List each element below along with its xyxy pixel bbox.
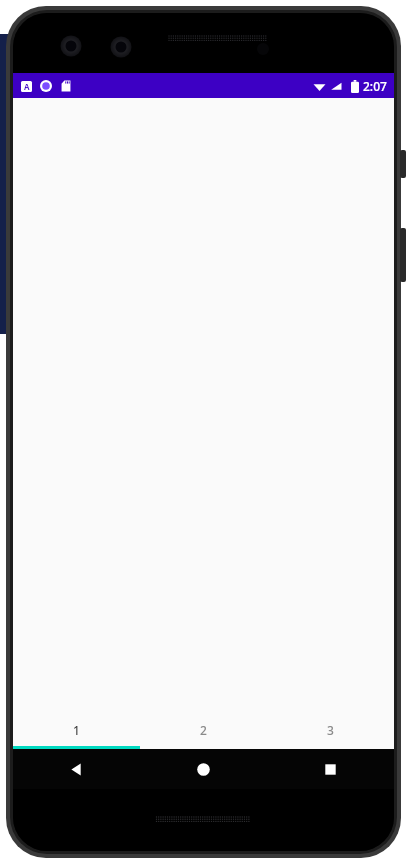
staticText: 3 bbox=[327, 722, 334, 738]
button[interactable]: Home bbox=[140, 749, 267, 789]
staticText: A bbox=[24, 81, 30, 92]
button[interactable]: 3 bbox=[267, 711, 394, 749]
button[interactable]: Recent apps bbox=[267, 749, 394, 789]
staticText: 2 bbox=[200, 722, 207, 738]
button[interactable]: 1 bbox=[13, 711, 140, 749]
button[interactable]: 2 bbox=[140, 711, 267, 749]
staticText: 2:07 bbox=[363, 78, 387, 94]
staticText: 1 bbox=[73, 722, 80, 738]
button[interactable]: Back bbox=[13, 749, 140, 789]
